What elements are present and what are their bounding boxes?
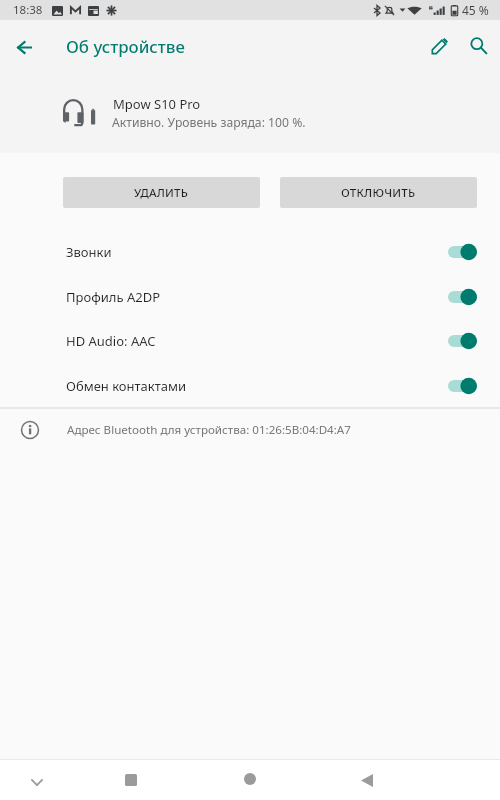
button[interactable]: Профиль A2DP	[0, 275, 500, 319]
button[interactable]: Обмен контактами	[0, 364, 500, 408]
staticText: Обмен контактами	[66, 377, 448, 395]
button[interactable]: ОТКЛЮЧИТЬ	[280, 177, 477, 208]
button[interactable]: УДАЛИТЬ	[63, 177, 260, 208]
button[interactable]: Hide keyboard	[17, 762, 57, 800]
staticText: УДАЛИТЬ	[134, 185, 189, 201]
staticText: Адрес Bluetooth для устройства: 01:26:5B…	[67, 422, 351, 438]
button[interactable]: Edit	[420, 26, 460, 66]
staticText: Активно. Уровень заряда: 100 %.	[112, 114, 306, 131]
button[interactable]: HD Audio: AAC	[0, 319, 500, 363]
staticText: Профиль A2DP	[66, 288, 448, 306]
staticText: Звонки	[66, 243, 448, 261]
staticText: Об устройстве	[66, 35, 185, 58]
button[interactable]: Recent apps	[111, 760, 151, 800]
staticText: Mpow S10 Pro	[113, 95, 201, 113]
staticText: ОТКЛЮЧИТЬ	[341, 185, 416, 201]
button[interactable]: Back	[4, 27, 44, 67]
staticText: 45 %	[462, 2, 489, 18]
staticText: HD Audio: AAC	[66, 332, 448, 350]
button[interactable]: Звонки	[0, 230, 500, 274]
button[interactable]: Back	[347, 760, 387, 800]
button[interactable]: Home	[230, 759, 270, 799]
button[interactable]: Search	[459, 26, 499, 66]
staticText: 18:38	[13, 2, 43, 18]
